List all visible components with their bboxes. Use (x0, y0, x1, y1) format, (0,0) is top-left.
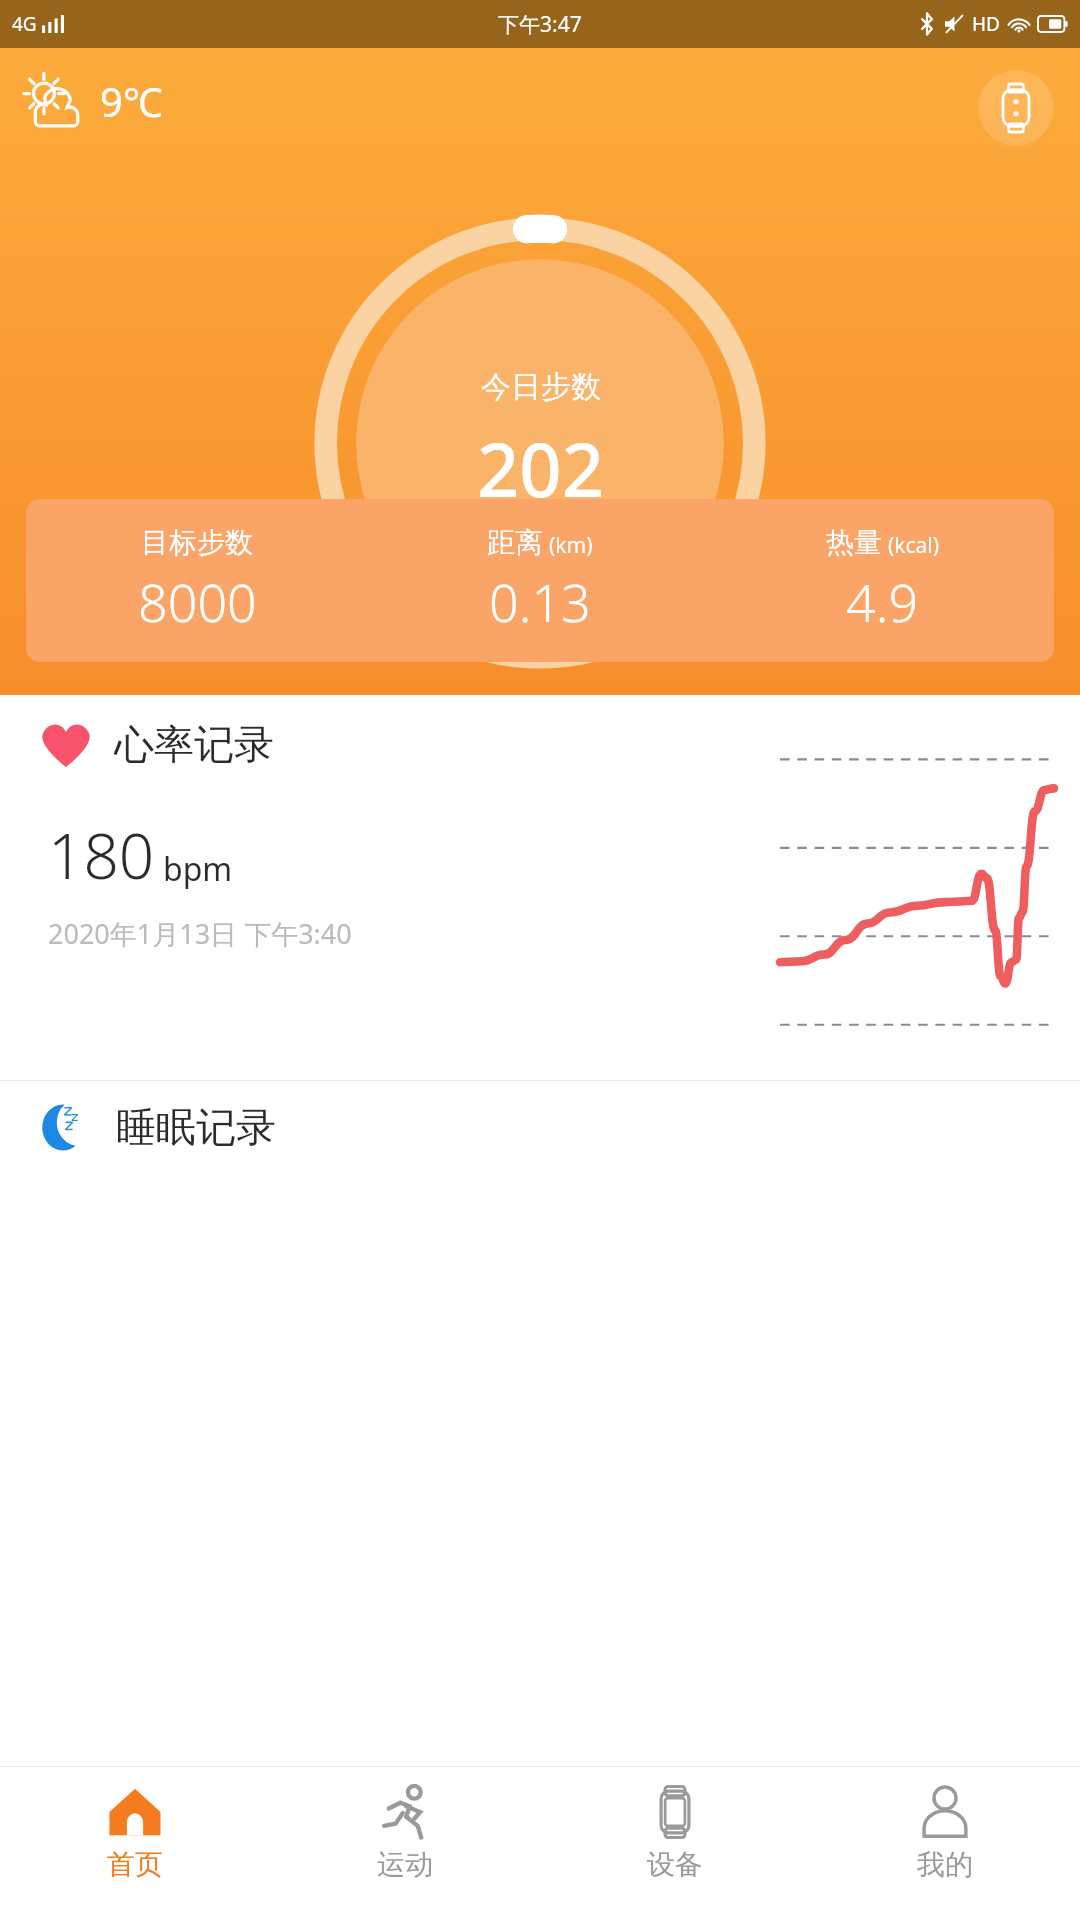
staticText: 180 (48, 813, 155, 897)
staticText: 睡眠记录 (116, 1102, 276, 1152)
staticText: 2020年1月13日 下午3:40 (48, 915, 352, 952)
staticText: 距离 (487, 525, 543, 560)
button[interactable]: 首页 (0, 1767, 270, 1920)
staticText: 设备 (647, 1847, 703, 1882)
staticText: (kcal) (888, 531, 940, 560)
staticText: 202 (477, 418, 604, 519)
staticText: 8000 (138, 566, 257, 637)
staticText: 目标步数 (141, 525, 253, 560)
button[interactable]: My band (978, 70, 1054, 146)
button[interactable]: 运动 (270, 1767, 540, 1920)
button[interactable]: 心率记录 (0, 695, 1080, 1080)
staticText: bpm (163, 847, 233, 891)
staticText: 9℃ (100, 74, 163, 128)
button[interactable]: 睡眠记录 (40, 1081, 1080, 1173)
button[interactable]: 我的 (810, 1767, 1080, 1920)
staticText: 4.9 (846, 566, 919, 637)
staticText: 首页 (107, 1847, 163, 1882)
staticText: HD (972, 11, 1000, 37)
button[interactable]: 目标步数 (26, 499, 1054, 662)
staticText: 热量 (826, 525, 882, 560)
staticText: 我的 (917, 1847, 973, 1882)
staticText: 0.13 (489, 566, 591, 637)
button[interactable]: 9℃ (18, 70, 163, 132)
staticText: 心率记录 (114, 719, 274, 769)
staticText: 4G (12, 11, 37, 37)
staticText: 今日步数 (481, 368, 601, 406)
staticText: 运动 (377, 1847, 433, 1882)
button[interactable]: 设备 (540, 1767, 810, 1920)
staticText: 下午3:47 (498, 10, 582, 39)
staticText: (km) (549, 531, 593, 560)
